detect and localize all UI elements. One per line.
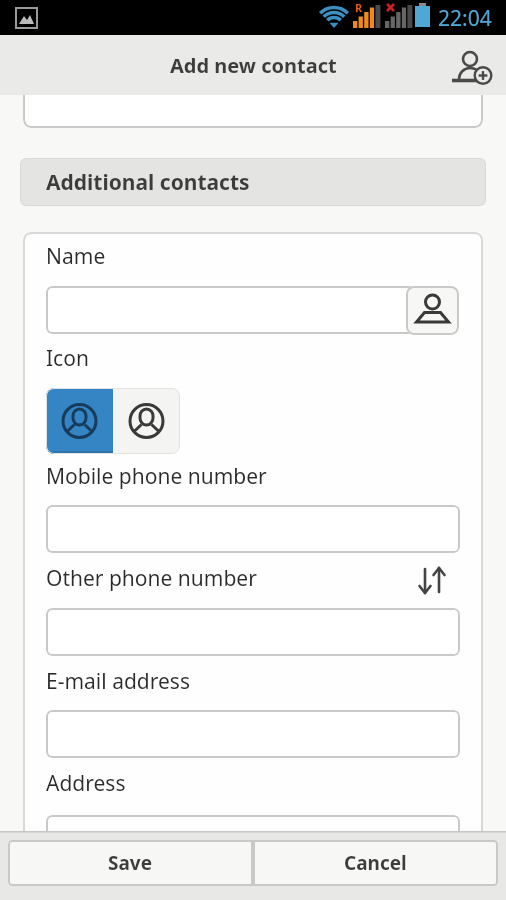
button[interactable]	[406, 286, 459, 335]
staticText: Mobile phone number	[46, 462, 267, 491]
staticText: Icon	[46, 344, 89, 373]
button[interactable]	[46, 286, 420, 334]
button[interactable]	[46, 608, 460, 656]
staticText: Cancel	[344, 850, 407, 876]
staticText: Other phone number	[46, 564, 257, 593]
staticText: Additional contacts	[46, 168, 250, 197]
button[interactable]	[450, 37, 506, 93]
button[interactable]: Save	[8, 840, 253, 886]
staticText: R	[355, 0, 363, 15]
button[interactable]: Cancel	[253, 840, 498, 886]
staticText: 22:04	[438, 4, 492, 33]
staticText: Save	[108, 850, 153, 876]
staticText: E-mail address	[46, 667, 190, 696]
staticText: Add new contact	[170, 52, 337, 79]
button[interactable]	[46, 710, 460, 758]
button[interactable]	[113, 388, 180, 454]
staticText: Name	[46, 242, 106, 271]
button[interactable]	[46, 505, 460, 553]
button[interactable]	[414, 562, 450, 598]
staticText: Address	[46, 769, 126, 798]
button[interactable]	[46, 388, 113, 454]
button[interactable]	[46, 815, 460, 863]
